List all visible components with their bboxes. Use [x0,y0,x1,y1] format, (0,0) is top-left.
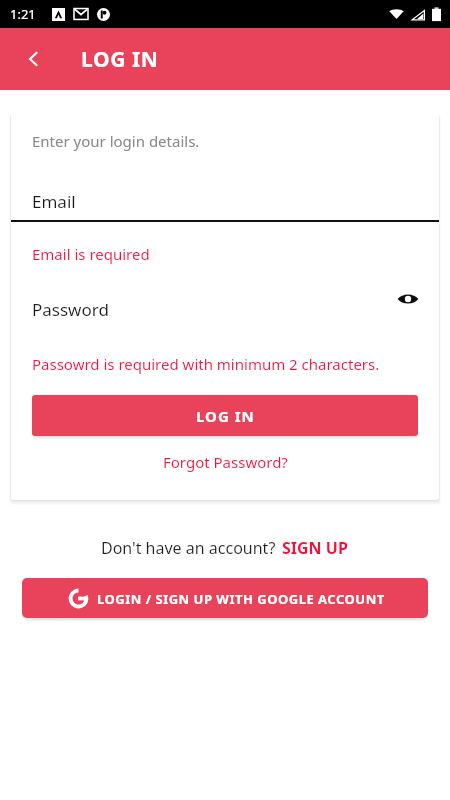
staticText: Don't have an account? [101,537,280,559]
staticText: SIGN UP [282,537,348,559]
button[interactable]: Back [14,39,54,79]
staticText: LOG IN [196,406,255,426]
staticText: LOGIN / SIGN UP WITH GOOGLE ACCOUNT [97,590,385,608]
button[interactable]: SIGN UP [280,534,350,562]
staticText: Enter your login details. [32,131,200,151]
staticText: Password [32,298,109,321]
button[interactable]: Password [11,290,439,328]
staticText: Passowrd is required with minimum 2 char… [32,354,380,374]
button[interactable]: LOG IN [32,395,418,436]
button[interactable]: Email [11,183,439,220]
staticText: Forgot Password? [163,452,288,472]
staticText: LOG IN [81,45,159,74]
button[interactable]: LOGIN / SIGN UP WITH GOOGLE ACCOUNT [22,578,428,618]
button[interactable]: Show password [393,284,423,314]
button[interactable]: Forgot Password? [153,448,298,476]
staticText: Email [32,190,76,213]
staticText: Email is required [32,244,150,264]
staticText: 1:21 [10,5,36,23]
